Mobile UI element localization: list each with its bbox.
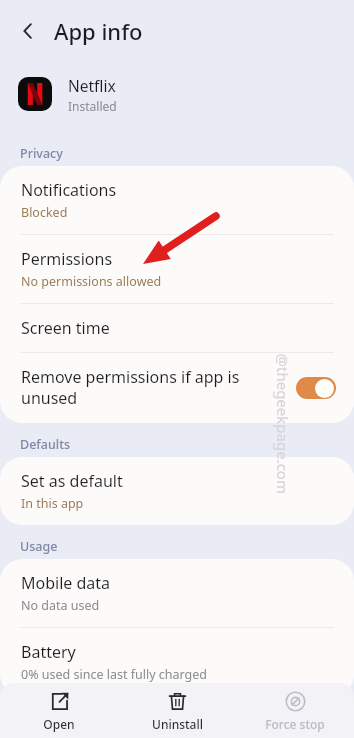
button[interactable]: Set as default [0,457,354,525]
staticText: Blocked [21,204,68,221]
button[interactable]: Mobile data [0,559,354,627]
button[interactable]: Screen time [0,304,354,352]
staticText: No permissions allowed [21,273,162,290]
button[interactable]: Notifications [0,166,354,234]
button[interactable]: Force stop [236,683,354,738]
staticText: Privacy [20,145,63,162]
staticText: 0% used since last fully charged [21,666,208,683]
staticText: Defaults [20,436,71,453]
staticText: Permissions [21,248,113,270]
staticText: Battery [21,641,76,663]
staticText: Notifications [21,179,117,201]
button[interactable]: Battery [0,628,354,696]
staticText: Usage [20,538,58,555]
staticText: Screen time [21,317,110,339]
button[interactable]: Remove permissions toggle [296,377,336,399]
staticText: Mobile data [21,572,111,594]
staticText: App info [54,16,143,46]
button[interactable]: Back [8,11,48,51]
staticText: Netflix [68,75,116,96]
staticText: @thegeekpage.com [272,353,292,494]
staticText: Installed [68,98,117,114]
button[interactable]: Open [0,683,118,738]
staticText: In this app [21,495,84,512]
staticText: Remove permissions if app is unused [21,366,286,409]
staticText: Uninstall [152,716,203,732]
staticText: No data used [21,597,100,614]
staticText: Open [43,716,75,732]
button[interactable]: Netflix [0,62,354,126]
button[interactable]: Permissions [0,235,354,303]
button[interactable]: Uninstall [118,683,236,738]
button[interactable]: Remove permissions if app is unused [0,353,354,423]
staticText: Force stop [265,716,325,732]
staticText: Set as default [21,470,123,492]
